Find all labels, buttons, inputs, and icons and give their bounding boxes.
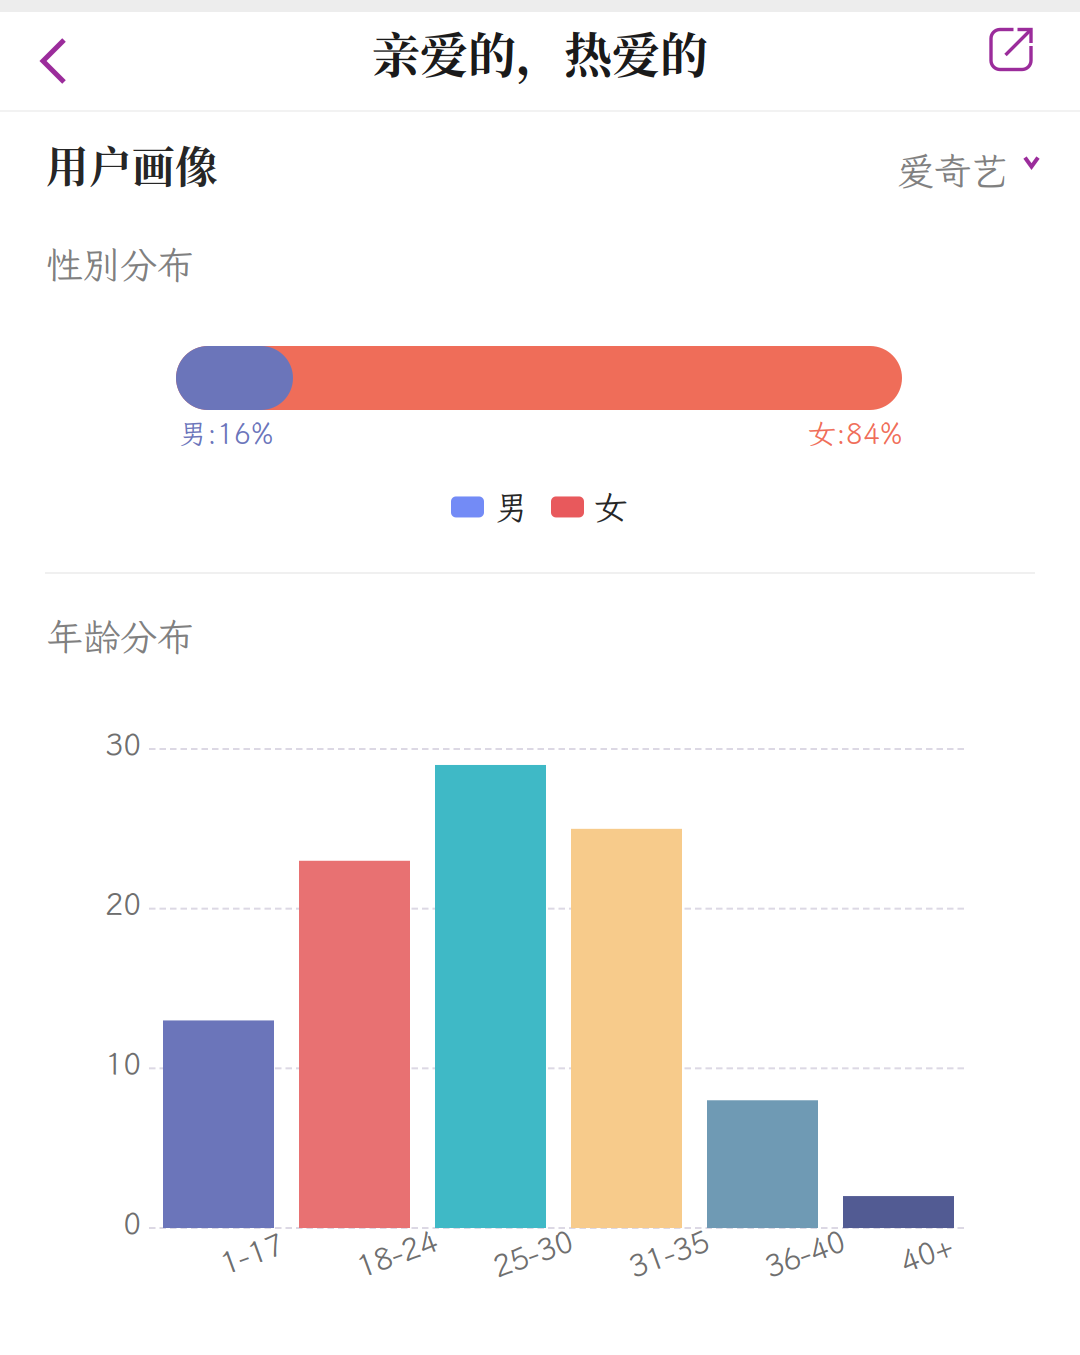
staticText: 性别分布 — [46, 240, 194, 289]
staticText: 年龄分布 — [46, 612, 194, 661]
staticText: 男 — [495, 485, 528, 529]
staticText: 30 — [105, 724, 141, 764]
staticText: 爱奇艺 — [897, 146, 1008, 195]
staticText: 31-35 — [627, 1233, 710, 1273]
staticText: 18-24 — [355, 1233, 438, 1273]
staticText: 20 — [105, 883, 141, 924]
staticText: 10 — [105, 1043, 141, 1083]
staticText: 40+ — [899, 1233, 953, 1273]
staticText: 用户画像 — [46, 134, 218, 195]
staticText: 男:16% — [179, 415, 273, 452]
staticText: 25-30 — [491, 1233, 574, 1273]
staticText: 1-17 — [219, 1233, 284, 1273]
staticText: 女:84% — [808, 415, 902, 452]
button[interactable]: Back — [0, 3, 107, 101]
button[interactable]: 爱奇艺 — [897, 146, 1040, 195]
staticText: 亲爱的，热爱的 — [372, 17, 708, 86]
button[interactable]: Share — [943, 3, 1080, 101]
staticText: 女 — [594, 485, 627, 529]
staticText: 36-40 — [763, 1233, 846, 1273]
staticText: 0 — [123, 1203, 141, 1243]
